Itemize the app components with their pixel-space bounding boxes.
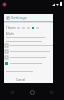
button[interactable]: Home — [26, 86, 39, 99]
button[interactable] — [5, 55, 53, 60]
staticText: Settings — [11, 15, 27, 20]
button[interactable]: Back — [6, 86, 19, 99]
button[interactable]: Cancel — [14, 77, 28, 83]
button[interactable] — [5, 61, 53, 66]
staticText: Cancel — [16, 78, 26, 82]
staticText: Mode — [6, 32, 15, 36]
staticText: Theme — [6, 26, 16, 30]
button[interactable] — [5, 43, 53, 48]
button[interactable]: Recents — [45, 86, 58, 99]
button[interactable] — [5, 49, 53, 54]
